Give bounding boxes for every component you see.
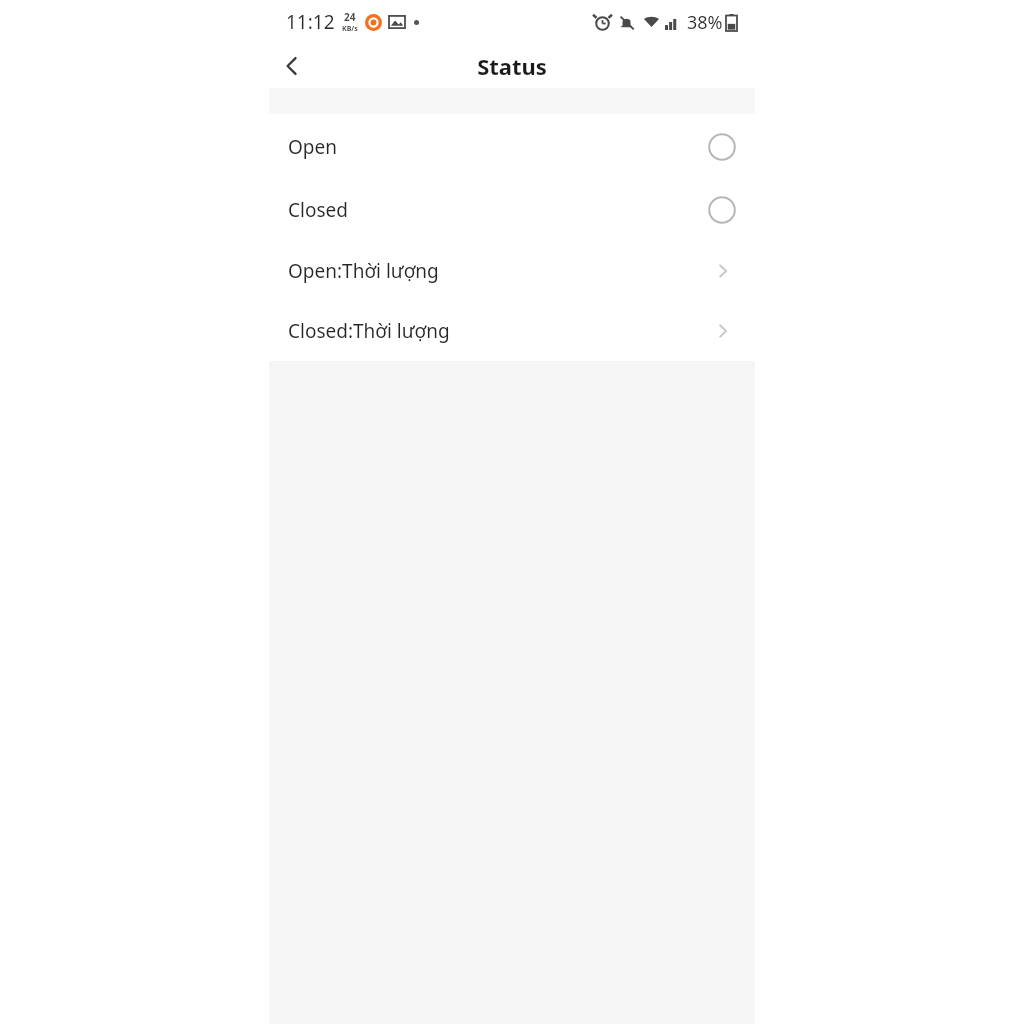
staticText: Status xyxy=(477,51,547,81)
button[interactable]: Back xyxy=(269,44,315,88)
button[interactable]: Closed:Thời lượng xyxy=(269,301,755,361)
staticText: Open:Thời lượng xyxy=(288,258,713,284)
staticText: 24 xyxy=(344,10,356,24)
staticText: 11:12 xyxy=(286,9,335,35)
button[interactable]: Closed xyxy=(269,178,755,241)
staticText: Closed xyxy=(288,197,708,223)
staticText: KB/s xyxy=(342,24,358,34)
button[interactable]: Open:Thời lượng xyxy=(269,241,755,301)
staticText: Open xyxy=(288,134,708,160)
button[interactable]: Open xyxy=(269,115,755,178)
staticText: 38% xyxy=(687,10,723,35)
staticText: Closed:Thời lượng xyxy=(288,318,713,344)
